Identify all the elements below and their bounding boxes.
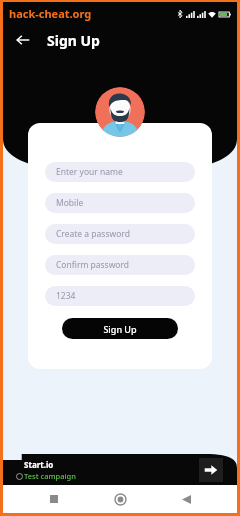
button[interactable]: Open ad <box>199 458 223 482</box>
button[interactable]: Recent apps <box>37 485 71 513</box>
button[interactable]: Confirm password <box>45 255 195 275</box>
button[interactable]: Back <box>11 28 35 52</box>
staticText: Sign Up <box>103 323 137 335</box>
staticText: Mobile <box>56 197 84 209</box>
staticText: Enter your name <box>56 166 123 178</box>
staticText: Start.io <box>24 459 54 470</box>
button[interactable]: Profile photo <box>95 87 145 137</box>
staticText: hack-cheat.org <box>9 6 92 21</box>
staticText: 1234 <box>56 290 76 302</box>
button[interactable]: Home <box>103 485 137 513</box>
button[interactable]: Sign Up <box>62 318 178 339</box>
button[interactable]: Back <box>169 485 203 513</box>
staticText: Confirm password <box>56 259 130 271</box>
staticText: Test campaign <box>24 471 76 481</box>
button[interactable]: Mobile <box>45 193 195 213</box>
button[interactable]: Create a password <box>45 224 195 244</box>
staticText: Sign Up <box>47 31 100 50</box>
staticText: Create a password <box>56 228 130 240</box>
button[interactable]: 1234 <box>45 286 195 306</box>
button[interactable]: Enter your name <box>45 162 195 182</box>
